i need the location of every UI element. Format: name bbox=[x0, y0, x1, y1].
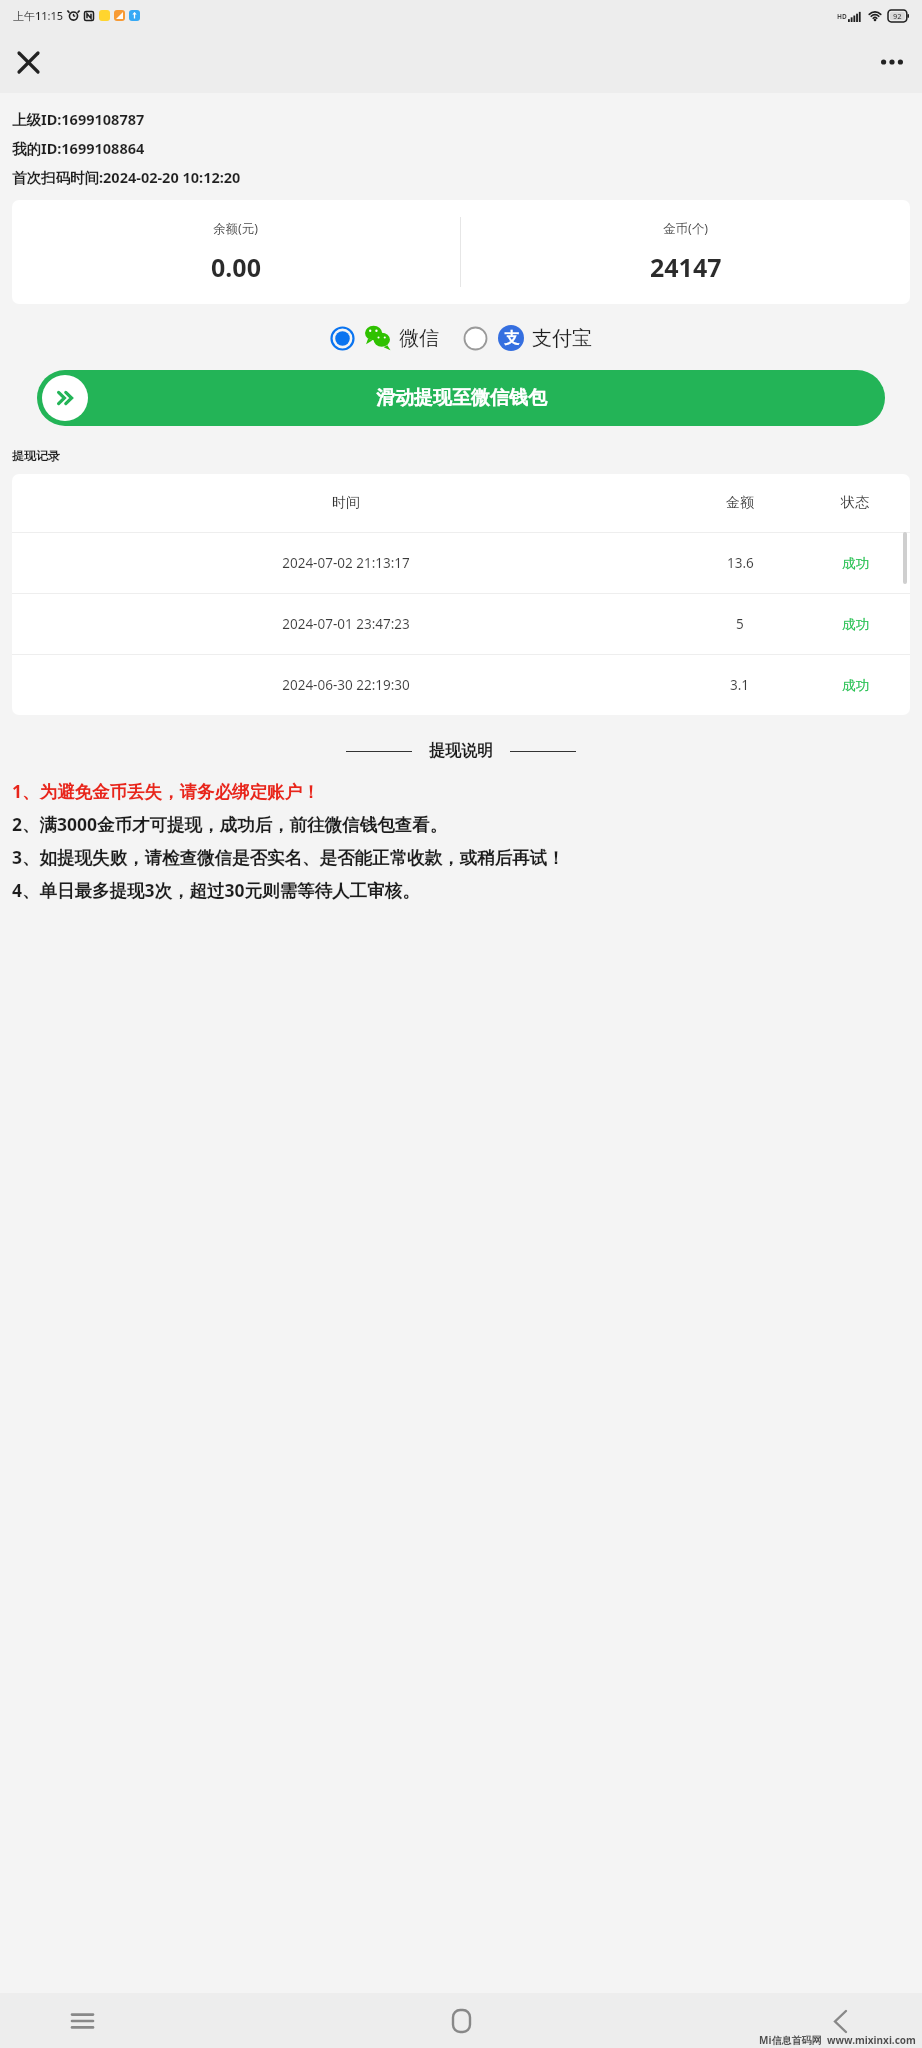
staticText: 状态 bbox=[841, 494, 869, 512]
staticText: 提现说明 bbox=[429, 741, 493, 761]
staticText: 提现记录 bbox=[12, 448, 60, 463]
staticText: 成功 bbox=[842, 616, 869, 633]
button[interactable]: 2024-07-02 21:13:17 bbox=[12, 533, 910, 593]
staticText: 2、满3000金币才可提现，成功后，前往微信钱包查看。 bbox=[12, 812, 448, 836]
button[interactable]: Back bbox=[816, 1997, 864, 2045]
button[interactable]: Close bbox=[8, 42, 48, 82]
button[interactable]: 支 bbox=[463, 325, 592, 351]
staticText: 首次扫码时间:2024-02-20 10:12:20 bbox=[12, 167, 241, 187]
staticText: 微信 bbox=[399, 326, 439, 351]
staticText: 0.00 bbox=[211, 250, 261, 284]
staticText: HD bbox=[837, 12, 847, 21]
staticText: 5 bbox=[736, 615, 744, 633]
staticText: 2024-07-02 21:13:17 bbox=[282, 554, 410, 572]
button[interactable]: 滑动提现至微信钱包 bbox=[37, 370, 885, 426]
staticText: 成功 bbox=[842, 677, 869, 694]
staticText: 24147 bbox=[650, 250, 722, 284]
staticText: 滑动提现至微信钱包 bbox=[376, 386, 547, 410]
staticText: 3、如提现失败，请检查微信是否实名、是否能正常收款，或稍后再试！ bbox=[12, 845, 565, 869]
button[interactable]: Recent apps bbox=[58, 1997, 106, 2045]
staticText: 金额 bbox=[726, 494, 754, 512]
staticText: 支 bbox=[504, 329, 519, 348]
staticText: 1、为避免金币丢失，请务必绑定账户！ bbox=[12, 779, 320, 803]
staticText: 时间 bbox=[332, 494, 360, 512]
staticText: 成功 bbox=[842, 555, 869, 572]
staticText: www.mixinxi.com bbox=[827, 2033, 916, 2047]
button[interactable]: 微信 bbox=[330, 325, 439, 351]
button[interactable]: Home bbox=[437, 1997, 485, 2045]
staticText: Mi信息首码网 bbox=[759, 2033, 822, 2047]
staticText: 上午11:15 bbox=[13, 8, 64, 23]
staticText: 我的ID:1699108864 bbox=[12, 138, 145, 158]
staticText: 余额(元) bbox=[213, 220, 259, 237]
staticText: 92 bbox=[893, 11, 902, 21]
button[interactable]: 时间 bbox=[12, 474, 910, 532]
staticText: 上级ID:1699108787 bbox=[12, 109, 145, 129]
staticText: 2024-06-30 22:19:30 bbox=[282, 676, 410, 694]
staticText: 支付宝 bbox=[532, 326, 592, 351]
staticText: 2024-07-01 23:47:23 bbox=[282, 615, 410, 633]
staticText: 3.1 bbox=[730, 676, 750, 694]
button[interactable]: 2024-07-01 23:47:23 bbox=[12, 594, 910, 654]
button[interactable]: 2024-06-30 22:19:30 bbox=[12, 655, 910, 715]
staticText: 13.6 bbox=[727, 554, 754, 572]
staticText: 金币(个) bbox=[663, 220, 709, 237]
button[interactable]: More options bbox=[872, 42, 912, 82]
staticText: 4、单日最多提现3次，超过30元则需等待人工审核。 bbox=[12, 878, 420, 902]
